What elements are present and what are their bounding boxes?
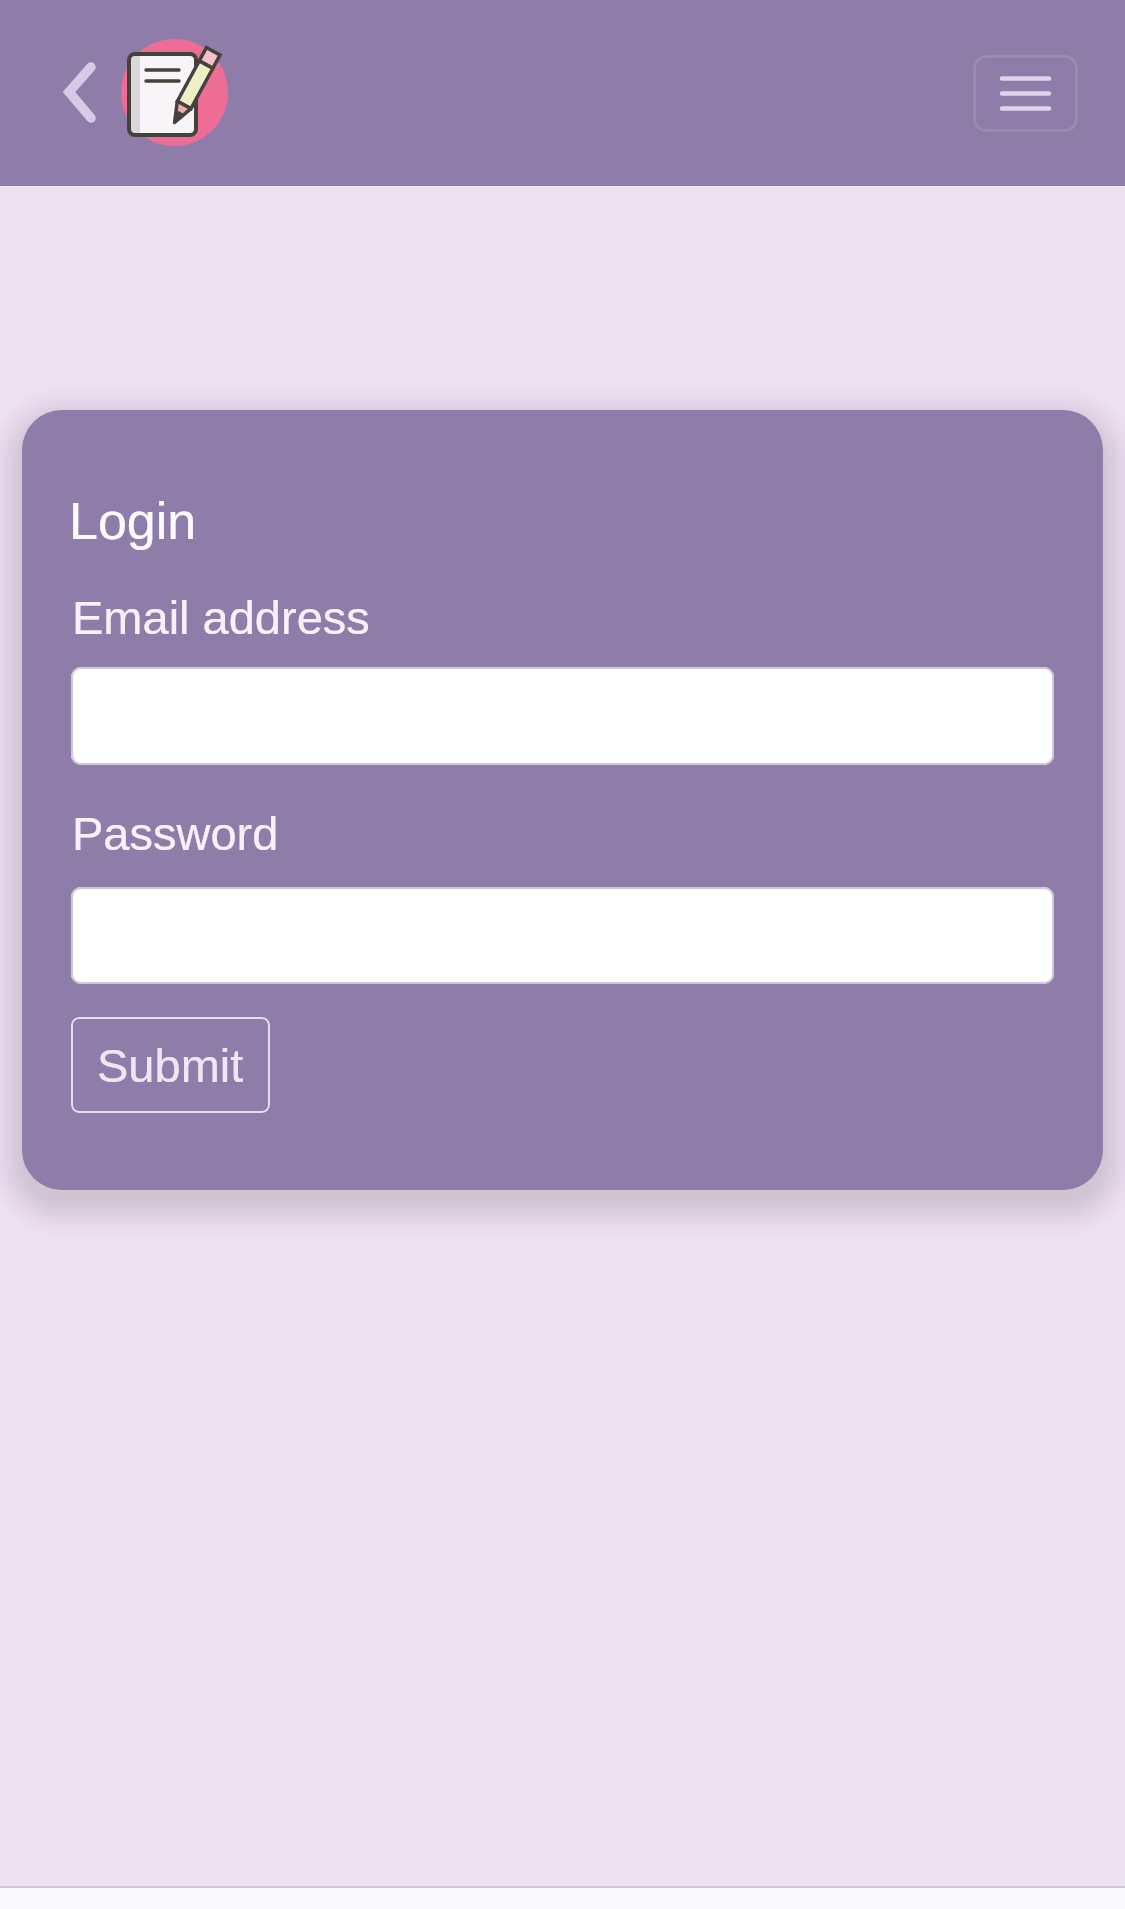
button[interactable] [973,55,1078,132]
button[interactable] [71,667,1054,765]
button[interactable] [121,39,228,146]
staticText: Email address [72,591,370,644]
button[interactable]: Submit [71,1017,270,1113]
button[interactable] [71,887,1054,984]
button[interactable] [50,53,102,131]
staticText: Submit [97,1039,244,1092]
staticText: Password [72,807,279,860]
staticText: Login [69,492,197,550]
